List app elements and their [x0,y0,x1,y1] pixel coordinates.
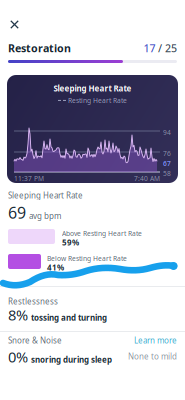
staticText: 59% [62,237,79,248]
staticText: 7:40 AM [134,174,160,183]
staticText: 41% [47,262,64,273]
staticText: 17 [143,41,155,55]
staticText: tossing and turning [31,312,107,323]
staticText: 69 [8,202,26,223]
staticText: snoring during sleep [31,354,112,365]
staticText: Learn more [134,335,177,346]
staticText: Restlessness [8,296,58,307]
staticText: Sleeping Heart Rate [53,83,131,94]
staticText: Below Resting Heart Rate [47,254,127,263]
staticText: Restoration [8,41,71,55]
staticText: 8% [8,305,28,324]
staticText: 58 [163,169,171,178]
staticText: Resting Heart Rate [68,96,127,105]
staticText: / 25 [158,41,177,55]
staticText: Sleeping Heart Rate [8,190,83,201]
staticText: Snore & Noise [8,335,62,346]
staticText: avg bpm [29,211,61,221]
staticText: 94 [163,128,171,137]
button[interactable]: Close [10,20,19,29]
staticText: 67 [163,159,171,168]
staticText: 76 [163,149,171,158]
staticText: Above Resting Heart Rate [62,229,142,238]
button[interactable]: Learn more [134,335,177,346]
staticText: None to mild [128,351,177,362]
staticText: 0% [8,347,28,366]
staticText: 11:37 PM [14,174,44,183]
